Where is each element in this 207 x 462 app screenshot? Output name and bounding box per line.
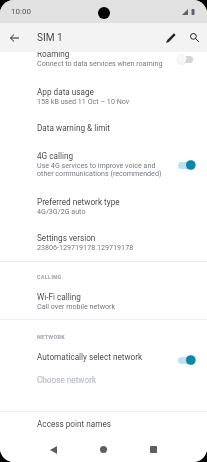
staticText: NETWORK [37,334,65,340]
button[interactable]: 4G calling [0,144,207,188]
button[interactable]: Back [39,437,68,462]
staticText: Call over mobile network [37,302,116,310]
staticText: Preferred network type [37,197,120,207]
button[interactable]: Automatically select network [0,345,207,367]
other: Off [177,54,193,64]
staticText: Data warning & limit [37,123,110,133]
button[interactable]: Wi-Fi calling [0,285,207,318]
other: On [177,355,193,365]
staticText: 4G calling [37,151,74,161]
staticText: CALLING [37,274,62,280]
other: On [177,160,193,170]
staticText: 10:00 [11,7,31,16]
button[interactable]: Search [183,26,207,50]
staticText: SIM 1 [37,32,63,44]
button[interactable]: Recent apps [139,437,168,462]
button[interactable]: Edit [159,26,183,50]
staticText: Choose network [37,375,97,385]
staticText: Access point names [37,419,111,429]
staticText: Wi-Fi calling [37,292,81,302]
staticText: App data usage [37,87,94,97]
staticText: Roaming [37,49,70,59]
staticText: Settings version [37,233,96,243]
staticText: Automatically select network [37,352,143,362]
staticText: Use 4G services to improve voice and [37,161,156,169]
staticText: 4G/3G/2G auto [37,207,86,215]
button[interactable]: Preferred network type [0,188,207,224]
button[interactable]: Home [89,437,118,462]
button[interactable]: Choose network [0,367,207,392]
button[interactable]: App data usage [0,72,207,108]
button[interactable]: Roaming [0,47,207,72]
button[interactable]: Settings version [0,224,207,261]
staticText: 23806-129719178.129719178 [37,243,134,251]
button[interactable]: Navigate up [2,26,26,50]
staticText: other communications (recommended) [37,169,162,177]
button[interactable]: Access point names [0,412,207,437]
staticText: 158 kB used 11 Oct – 10 Nov [37,97,130,105]
staticText: Connect to data services when roaming [37,59,163,67]
button[interactable]: Data warning & limit [0,108,207,144]
